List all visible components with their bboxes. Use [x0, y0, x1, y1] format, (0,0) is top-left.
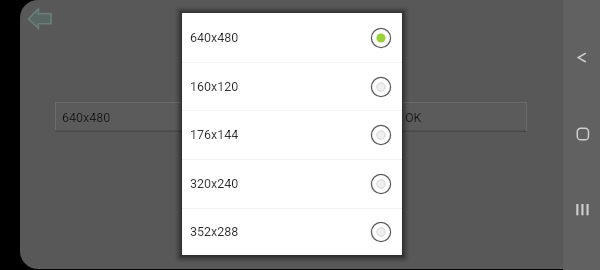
button[interactable]: 320x240 [182, 159, 402, 208]
button[interactable]: 176x144 [182, 110, 402, 159]
button[interactable]: OK [387, 102, 527, 132]
button[interactable]: Recent apps [568, 197, 595, 224]
staticText: 352x288 [190, 224, 239, 239]
button[interactable]: 640x480 [55, 102, 527, 132]
button[interactable]: Back [568, 44, 595, 71]
staticText: 176x144 [190, 127, 239, 142]
button[interactable]: 160x120 [182, 62, 402, 111]
staticText: 320x240 [190, 176, 239, 191]
button[interactable]: Back [22, 0, 64, 42]
staticText: 160x120 [190, 79, 239, 94]
staticText: OK [405, 110, 422, 125]
button[interactable]: 640x480 [182, 13, 402, 62]
staticText: 640x480 [62, 110, 111, 125]
button[interactable]: 352x288 [182, 208, 402, 255]
staticText: 640x480 [190, 30, 239, 45]
button[interactable]: Home [568, 120, 595, 147]
